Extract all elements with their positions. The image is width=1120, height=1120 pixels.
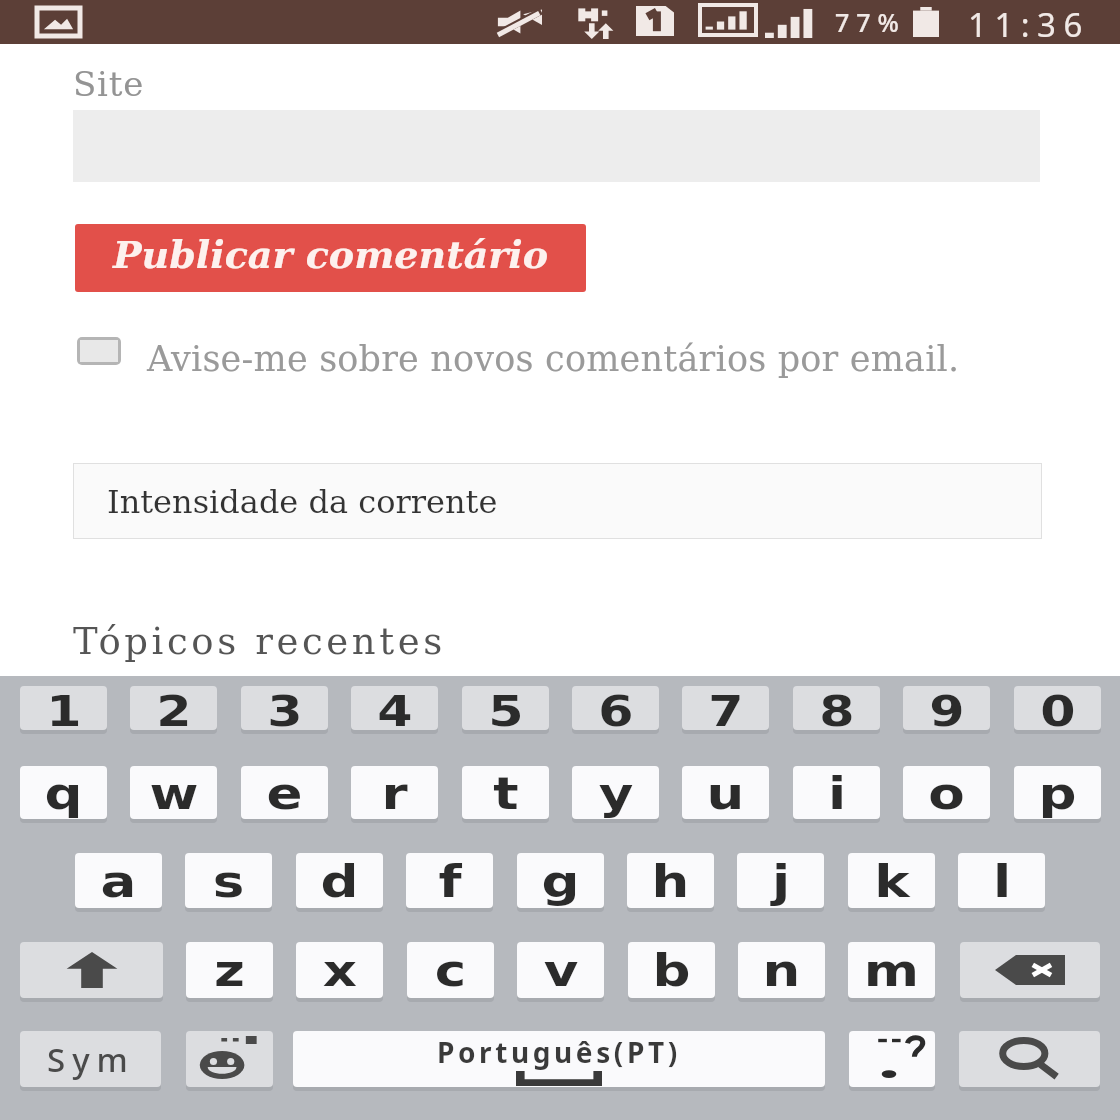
- button[interactable]: 8: [793, 686, 880, 730]
- button[interactable]: 9: [903, 686, 990, 730]
- button[interactable]: c: [407, 942, 494, 998]
- staticText: Intensidade da corrente: [107, 483, 498, 520]
- staticText: r: [381, 767, 408, 819]
- button[interactable]: Shift: [20, 942, 163, 998]
- button[interactable]: e: [241, 766, 328, 819]
- button[interactable]: g: [517, 853, 604, 908]
- staticText: u: [706, 767, 745, 819]
- button[interactable]: q: [20, 766, 107, 819]
- button[interactable]: 5: [462, 686, 549, 730]
- staticText: 4: [377, 686, 413, 730]
- staticText: k: [874, 855, 910, 907]
- button[interactable]: h: [627, 853, 714, 908]
- staticText: j: [772, 855, 790, 907]
- staticText: g: [541, 855, 580, 907]
- staticText: 77%: [835, 5, 906, 39]
- button[interactable]: 6: [572, 686, 659, 730]
- staticText: z: [214, 944, 245, 996]
- button[interactable]: v: [517, 942, 604, 998]
- button[interactable]: Avise-me sobre novos comentários por ema…: [77, 333, 960, 385]
- staticText: x: [322, 944, 358, 996]
- button[interactable]: y: [572, 766, 659, 819]
- button[interactable]: Backspace: [960, 942, 1100, 998]
- staticText: y: [598, 767, 634, 819]
- button[interactable]: Sym: [20, 1031, 161, 1087]
- staticText: i: [828, 767, 846, 819]
- button[interactable]: f: [406, 853, 493, 908]
- staticText: 6: [598, 686, 634, 730]
- staticText: 7: [708, 686, 744, 730]
- button[interactable]: j: [737, 853, 824, 908]
- staticText: 0: [1040, 686, 1076, 730]
- button[interactable]: Emoji: [186, 1031, 273, 1087]
- staticText: h: [651, 855, 690, 907]
- staticText: n: [762, 944, 801, 996]
- button[interactable]: Intensidade da corrente: [74, 464, 1041, 538]
- staticText: w: [149, 767, 199, 819]
- button[interactable]: m: [848, 942, 935, 998]
- staticText: l: [993, 855, 1011, 907]
- staticText: q: [44, 767, 83, 819]
- button[interactable]: d: [296, 853, 383, 908]
- staticText: 11:36: [968, 2, 1090, 46]
- staticText: 3: [267, 686, 303, 730]
- staticText: a: [100, 855, 137, 907]
- button[interactable]: Publicar comentário: [75, 224, 586, 292]
- button[interactable]: k: [848, 853, 935, 908]
- staticText: 1: [46, 686, 82, 730]
- button[interactable]: b: [628, 942, 715, 998]
- button[interactable]: t: [462, 766, 549, 819]
- button[interactable]: 0: [1014, 686, 1101, 730]
- button[interactable]: 4: [351, 686, 438, 730]
- staticText: 8: [819, 686, 855, 730]
- button[interactable]: Space: [293, 1031, 825, 1087]
- button[interactable]: n: [738, 942, 825, 998]
- staticText: 2: [156, 686, 192, 730]
- staticText: m: [864, 944, 919, 996]
- staticText: d: [320, 855, 359, 907]
- button[interactable]: 7: [682, 686, 769, 730]
- staticText: Tópicos recentes: [73, 620, 446, 663]
- button[interactable]: l: [958, 853, 1045, 908]
- staticText: Avise-me sobre novos comentários por ema…: [147, 339, 960, 380]
- staticText: p: [1038, 767, 1077, 819]
- staticText: Site: [73, 64, 145, 104]
- staticText: s: [213, 855, 244, 907]
- staticText: e: [266, 767, 303, 819]
- staticText: t: [493, 767, 519, 819]
- button[interactable]: 3: [241, 686, 328, 730]
- button[interactable]: u: [682, 766, 769, 819]
- button[interactable]: s: [185, 853, 272, 908]
- staticText: v: [543, 944, 579, 996]
- button[interactable]: Search: [959, 1031, 1100, 1087]
- button[interactable]: a: [75, 853, 162, 908]
- staticText: c: [435, 944, 466, 996]
- staticText: Português(PT): [437, 1033, 681, 1071]
- staticText: Sym: [47, 1037, 135, 1082]
- button[interactable]: i: [793, 766, 880, 819]
- button[interactable]: p: [1014, 766, 1101, 819]
- button[interactable]: 2: [130, 686, 217, 730]
- button[interactable]: r: [351, 766, 438, 819]
- button[interactable]: o: [903, 766, 990, 819]
- staticText: o: [928, 767, 965, 819]
- staticText: b: [652, 944, 691, 996]
- button[interactable]: Punctuation: [849, 1031, 935, 1087]
- button[interactable]: x: [296, 942, 383, 998]
- staticText: 9: [929, 686, 965, 730]
- button[interactable]: z: [186, 942, 273, 998]
- staticText: Publicar comentário: [113, 232, 549, 277]
- staticText: 5: [488, 686, 524, 730]
- staticText: f: [438, 855, 462, 907]
- button[interactable]: w: [130, 766, 217, 819]
- button[interactable]: 1: [20, 686, 107, 730]
